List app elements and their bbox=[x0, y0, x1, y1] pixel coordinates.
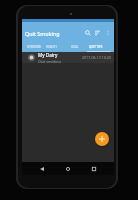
staticText: Quit Smoking bbox=[25, 30, 60, 37]
button[interactable]: More options bbox=[103, 28, 113, 38]
staticText: OVERVIEW bbox=[27, 45, 41, 49]
staticText: 2017-06-13 10:20 bbox=[82, 55, 111, 60]
button[interactable]: Search bbox=[83, 28, 93, 38]
button[interactable]: Home bbox=[64, 165, 72, 173]
button[interactable]: Recent apps bbox=[90, 165, 98, 173]
staticText: GOAL bbox=[71, 45, 79, 49]
button[interactable]: QUIT TIPS bbox=[89, 45, 103, 49]
button[interactable]: Sort bbox=[93, 28, 103, 38]
button[interactable]: OVERVIEW bbox=[27, 45, 41, 49]
button[interactable]: GOAL bbox=[71, 45, 79, 49]
staticText: My Dairy bbox=[38, 52, 58, 58]
staticText: QUIT TIPS bbox=[89, 45, 103, 49]
button[interactable]: HEALTH bbox=[46, 45, 57, 49]
button[interactable]: My Dairy bbox=[22, 52, 114, 63]
button[interactable]: Add entry bbox=[95, 132, 109, 146]
staticText: Quit smoking bbox=[38, 59, 61, 63]
staticText: HEALTH bbox=[46, 45, 57, 49]
button[interactable]: Back bbox=[38, 165, 46, 173]
